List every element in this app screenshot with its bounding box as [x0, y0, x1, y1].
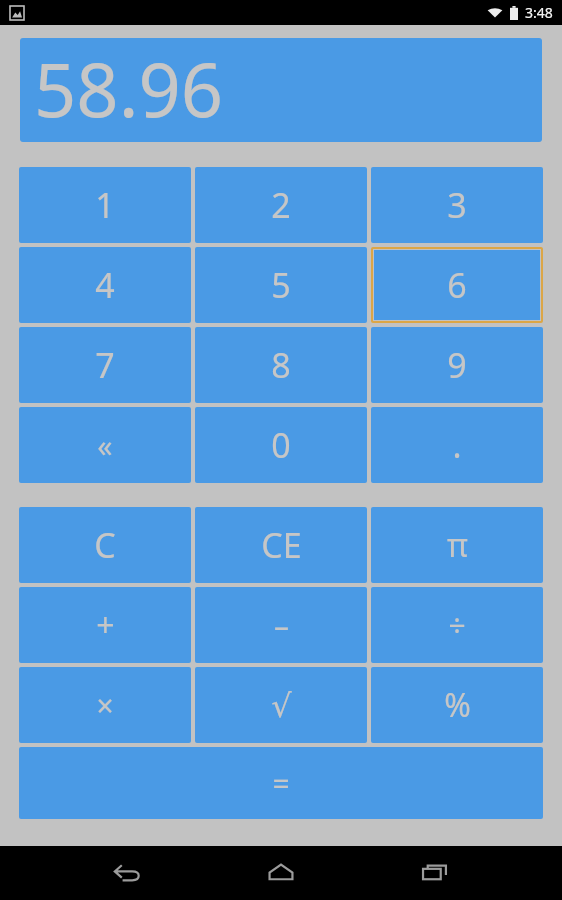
staticText: +	[96, 603, 115, 647]
staticText: π	[447, 523, 468, 567]
button[interactable]: «	[19, 407, 191, 483]
button[interactable]: %	[371, 667, 543, 743]
staticText: 58.96	[34, 38, 224, 134]
staticText: √	[271, 687, 292, 724]
staticText: 0	[271, 422, 291, 468]
staticText: 8	[271, 342, 291, 388]
button[interactable]: 5	[195, 247, 367, 323]
staticText: 7	[95, 342, 115, 388]
other: Screenshot	[10, 6, 24, 20]
button[interactable]: 1	[19, 167, 191, 243]
button[interactable]: Back	[100, 846, 154, 900]
staticText: CE	[261, 522, 302, 568]
staticText: 3	[447, 182, 467, 228]
staticText: .	[452, 422, 462, 468]
staticText: C	[94, 522, 116, 568]
staticText: ×	[96, 685, 114, 726]
button[interactable]: 3	[371, 167, 543, 243]
staticText: –	[274, 605, 289, 646]
button[interactable]: CE	[195, 507, 367, 583]
button[interactable]: 58.96	[20, 38, 542, 142]
staticText: 3:48	[525, 3, 553, 22]
staticText: %	[444, 683, 471, 727]
button[interactable]: –	[195, 587, 367, 663]
button[interactable]: 8	[195, 327, 367, 403]
staticText: «	[97, 425, 113, 466]
staticText: 2	[271, 182, 291, 228]
button[interactable]: 6	[374, 250, 540, 320]
button[interactable]: =	[19, 747, 543, 819]
staticText: ÷	[448, 605, 466, 646]
button[interactable]: ÷	[371, 587, 543, 663]
button[interactable]: 4	[19, 247, 191, 323]
button[interactable]: 7	[19, 327, 191, 403]
button[interactable]: .	[371, 407, 543, 483]
staticText: 6	[447, 262, 467, 308]
staticText: 9	[447, 342, 467, 388]
button[interactable]: +	[19, 587, 191, 663]
button[interactable]: √	[195, 667, 367, 743]
button[interactable]: π	[371, 507, 543, 583]
button[interactable]: 2	[195, 167, 367, 243]
button[interactable]: Home	[254, 846, 308, 900]
staticText: =	[272, 763, 290, 804]
button[interactable]: ×	[19, 667, 191, 743]
staticText: 5	[271, 262, 291, 308]
button[interactable]: 0	[195, 407, 367, 483]
button[interactable]: Recent apps	[408, 846, 462, 900]
button[interactable]: 9	[371, 327, 543, 403]
staticText: 1	[95, 182, 115, 228]
button[interactable]: C	[19, 507, 191, 583]
staticText: 4	[95, 262, 115, 308]
